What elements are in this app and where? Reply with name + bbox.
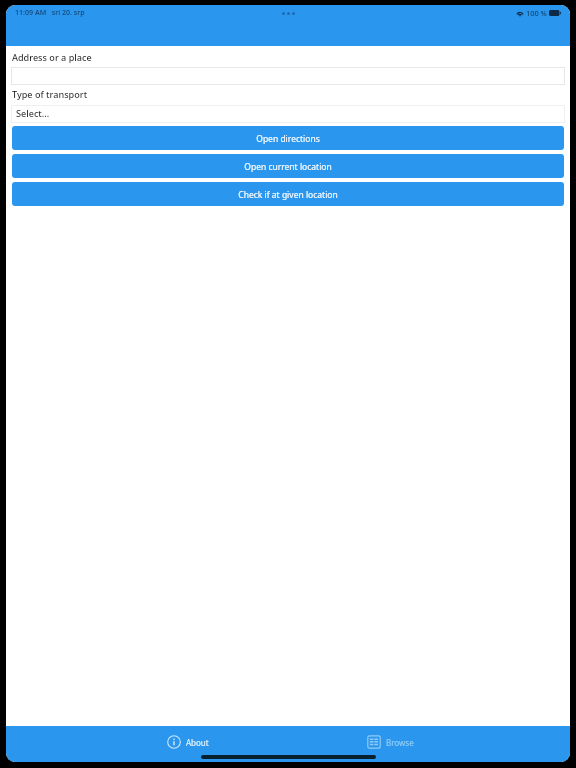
staticText: 100 % [526, 8, 547, 18]
staticText: Address or a place [12, 51, 92, 63]
button[interactable]: Address or a place text field [11, 67, 565, 85]
staticText: About [186, 737, 209, 748]
button[interactable]: Open current location [12, 154, 564, 178]
staticText: Type of transport [12, 88, 88, 100]
staticText: Open directions [256, 133, 320, 145]
button[interactable]: Check if at given location [12, 182, 564, 206]
staticText: Check if at given location [238, 189, 338, 201]
staticText: Open current location [244, 161, 332, 173]
staticText: 11:09 AM sri 20. srp [15, 7, 85, 17]
button[interactable]: Select... [11, 105, 565, 123]
button[interactable]: Open directions [12, 126, 564, 150]
button[interactable]: About [135, 726, 235, 752]
button[interactable]: Browse [335, 726, 439, 752]
staticText: Browse [386, 737, 414, 748]
staticText: Select... [16, 107, 50, 119]
